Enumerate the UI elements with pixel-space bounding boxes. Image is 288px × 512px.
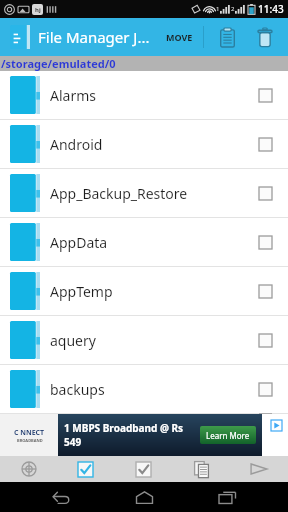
staticText: aquery	[50, 331, 252, 350]
button[interactable]: App icon	[10, 25, 30, 49]
button[interactable]: Checked	[57, 456, 114, 482]
button[interactable]: Select Alarms	[252, 82, 278, 108]
staticText: MOVE	[166, 31, 193, 43]
button[interactable]: Copy	[172, 456, 230, 482]
staticText: C NNECT	[14, 428, 45, 438]
button[interactable]: MOVE	[162, 31, 197, 43]
staticText: 1	[216, 5, 220, 13]
staticText: AppTemp	[50, 282, 252, 301]
staticText: AppData	[50, 233, 252, 252]
button[interactable]: Select AppTemp	[252, 278, 278, 304]
staticText: hj	[35, 6, 41, 14]
button[interactable]: Paste	[212, 22, 242, 52]
button[interactable]: Delete	[250, 22, 280, 52]
button[interactable]: Back	[39, 482, 83, 512]
button[interactable]: Select all	[0, 456, 57, 482]
staticText: Alarms	[50, 86, 252, 105]
button[interactable]: Learn More	[206, 426, 250, 444]
staticText: File Manager J...	[38, 27, 150, 47]
staticText: 11:43	[258, 2, 284, 16]
button[interactable]: Select backups	[252, 376, 278, 402]
button[interactable]: Select aquery	[252, 327, 278, 353]
button[interactable]: AppTemp	[0, 267, 288, 316]
button[interactable]: Unchecked	[114, 456, 172, 482]
staticText: /storage/emulated/0	[1, 56, 116, 71]
button[interactable]: Send	[230, 456, 288, 482]
staticText: 2	[231, 5, 235, 13]
button[interactable]: Select Android	[252, 131, 278, 157]
button[interactable]: Recents	[205, 482, 249, 512]
button[interactable]: aquery	[0, 316, 288, 365]
button[interactable]: backups	[0, 365, 288, 414]
button[interactable]: App_Backup_Restore	[0, 169, 288, 218]
staticText: 1 MBPS Broadband @ Rs 549	[64, 421, 196, 449]
button[interactable]: Select App_Backup_Restore	[252, 180, 278, 206]
other: Ad info	[271, 420, 282, 431]
staticText: BROADBAND	[17, 438, 43, 443]
button[interactable]: Home	[122, 482, 166, 512]
staticText: Android	[50, 135, 252, 154]
button[interactable]: Select AppData	[252, 229, 278, 255]
button[interactable]: AppData	[0, 218, 288, 267]
staticText: backups	[50, 380, 252, 399]
button[interactable]: C NNECT	[0, 414, 262, 456]
button[interactable]: Alarms	[0, 71, 288, 120]
staticText: Learn More	[206, 430, 250, 441]
staticText: App_Backup_Restore	[50, 184, 252, 203]
button[interactable]: Android	[0, 120, 288, 169]
